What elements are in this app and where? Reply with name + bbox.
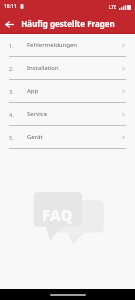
staticText: 4. xyxy=(9,111,14,118)
button[interactable]: 2. xyxy=(0,57,135,79)
staticText: 3. xyxy=(9,88,14,95)
staticText: Gerät xyxy=(27,133,121,141)
staticText: App xyxy=(27,87,121,95)
staticText: 16:11 xyxy=(4,3,17,10)
button[interactable]: 5. xyxy=(0,126,135,148)
staticText: Häufig gestellte Fragen xyxy=(21,18,115,29)
button[interactable]: 1. xyxy=(0,34,135,56)
staticText: FAQ xyxy=(42,205,73,225)
staticText: 5. xyxy=(9,134,14,141)
button[interactable]: Startbildschirm xyxy=(50,294,86,296)
button[interactable]: 3. xyxy=(0,80,135,102)
staticText: Service xyxy=(27,110,121,118)
staticText: Fehlermeldungen xyxy=(27,41,121,49)
button[interactable]: Zurück xyxy=(0,15,18,33)
staticText: 2. xyxy=(9,65,14,72)
button[interactable]: 4. xyxy=(0,103,135,125)
staticText: 1. xyxy=(9,42,14,49)
staticText: Installation xyxy=(27,64,121,72)
staticText: LTE xyxy=(109,4,117,10)
